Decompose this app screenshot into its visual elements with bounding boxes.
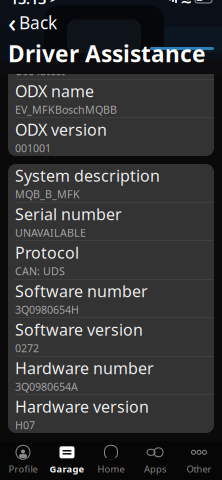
button[interactable]: ‹: [0, 10, 222, 34]
staticText: 3Q0980654A: [15, 379, 78, 394]
button[interactable]: Garage: [45, 441, 89, 479]
button[interactable]: Profile: [1, 441, 45, 479]
staticText: ➤: [49, 0, 58, 4]
staticText: Use latest: [15, 64, 65, 78]
staticText: 3Q0980654H: [15, 302, 79, 317]
staticText: ODX name: [15, 80, 94, 101]
staticText: ODX version: [15, 119, 107, 140]
staticText: Hardware number: [15, 357, 154, 378]
staticText: UNAVAILABLE: [15, 225, 86, 240]
staticText: Software version: [15, 319, 143, 340]
staticText: Garage: [49, 463, 84, 475]
button[interactable]: Other: [177, 441, 221, 479]
staticText: CAN: UDS: [15, 264, 65, 278]
staticText: Protocol: [15, 242, 79, 263]
staticText: EV_MFKBoschMQBB: [15, 102, 117, 117]
staticText: System description: [15, 165, 160, 186]
staticText: MQB_B_MFK: [15, 187, 80, 201]
staticText: ≋: [180, 0, 192, 7]
staticText: Serial number: [15, 203, 122, 224]
staticText: Back: [19, 11, 57, 34]
staticText: Software number: [15, 280, 148, 301]
staticText: 001001: [15, 141, 51, 155]
staticText: Home: [97, 463, 124, 475]
staticText: Profile: [8, 463, 37, 475]
button[interactable]: Apps: [133, 441, 177, 479]
staticText: Driver Assistance: [8, 38, 206, 68]
staticText: 13:13: [10, 0, 46, 8]
staticText: Hardware version: [15, 396, 149, 417]
staticText: Other: [186, 463, 211, 475]
staticText: Apps: [144, 463, 166, 475]
button[interactable]: Home: [89, 441, 133, 479]
staticText: 0272: [15, 341, 39, 355]
staticText: H07: [15, 418, 35, 432]
staticText: ‹: [8, 6, 16, 39]
